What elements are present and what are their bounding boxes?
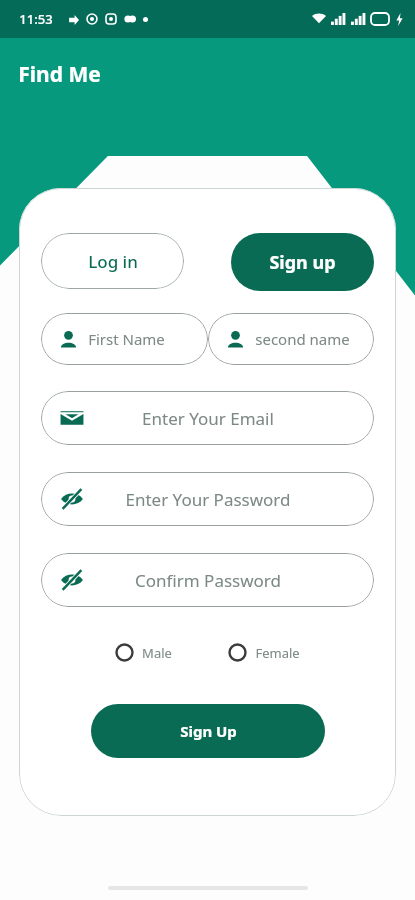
staticText: Find Me	[18, 60, 101, 89]
button[interactable]: Email	[41, 391, 374, 445]
staticText: Confirm Password	[135, 569, 281, 592]
staticText: Female	[255, 644, 300, 662]
staticText: 11:53	[19, 10, 53, 28]
staticText: second name	[255, 329, 350, 349]
other: Person	[59, 330, 78, 349]
other: Toggle password visibility	[59, 567, 85, 593]
button[interactable]: Toggle password visibility	[41, 553, 374, 607]
button[interactable]: Male	[111, 639, 176, 666]
other: Person	[226, 330, 245, 349]
button[interactable]: Person	[208, 313, 374, 365]
staticText: Log in	[88, 250, 138, 273]
staticText: Male	[142, 644, 172, 662]
staticText: Sign up	[269, 250, 336, 275]
button[interactable]: Log in	[41, 233, 184, 289]
staticText: Sign Up	[180, 721, 237, 741]
button[interactable]: Sign up	[231, 233, 374, 291]
button[interactable]: Sign Up	[91, 704, 325, 758]
button[interactable]: Person	[41, 313, 208, 365]
button[interactable]: Female	[224, 639, 304, 666]
staticText: Enter Your Password	[125, 488, 291, 511]
staticText: Enter Your Email	[142, 407, 274, 430]
staticText: First Name	[88, 329, 165, 349]
other: Toggle password visibility	[59, 486, 85, 512]
button[interactable]: Toggle password visibility	[41, 472, 374, 526]
other: Email	[59, 405, 85, 431]
